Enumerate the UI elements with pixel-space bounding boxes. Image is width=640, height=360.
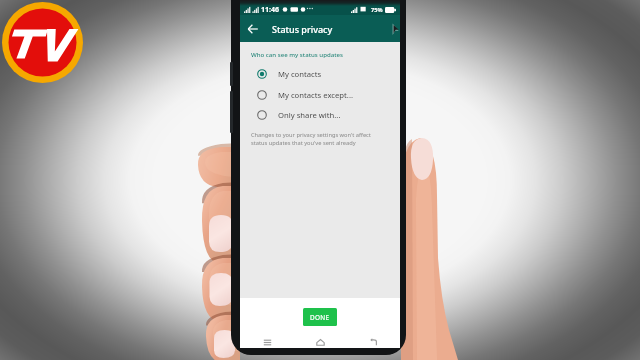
button[interactable]: Recent apps — [240, 336, 294, 348]
staticText: Status privacy — [272, 23, 333, 35]
staticText: My contacts except... — [278, 90, 354, 100]
button[interactable]: My contacts except... — [240, 84, 400, 105]
staticText: Changes to your privacy settings won't a… — [251, 131, 371, 147]
staticText: DONE — [310, 313, 330, 322]
button[interactable]: TV channel logo — [2, 2, 83, 83]
button[interactable]: DONE — [303, 308, 337, 326]
button[interactable]: Back — [245, 21, 261, 37]
staticText: My contacts — [278, 69, 322, 79]
button[interactable]: Back — [347, 336, 400, 348]
staticText: 11:46 — [261, 5, 279, 15]
button[interactable]: Only share with... — [240, 104, 400, 125]
button[interactable]: More options — [391, 22, 399, 36]
button[interactable]: Home — [294, 336, 347, 348]
button[interactable]: My contacts — [240, 63, 400, 84]
staticText: Who can see my status updates — [251, 50, 343, 58]
staticText: Only share with... — [278, 110, 341, 120]
staticText: 75% — [371, 6, 383, 14]
